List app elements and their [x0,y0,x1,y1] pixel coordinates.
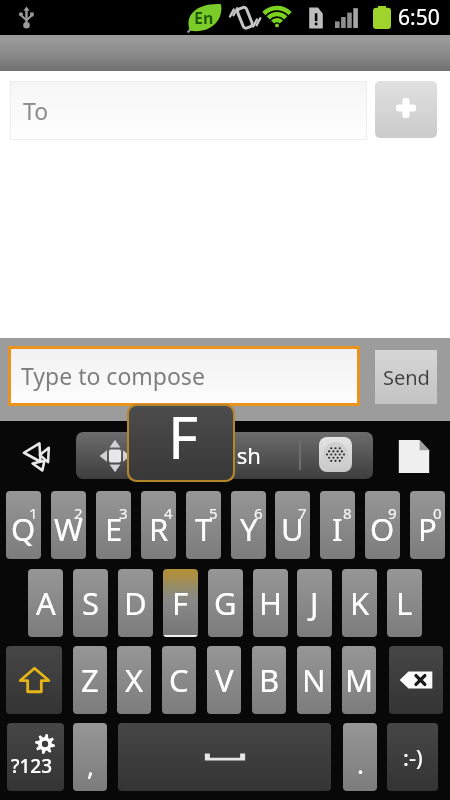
button[interactable]: M [342,646,376,714]
button[interactable]: Page [393,436,435,476]
button[interactable]: F [163,569,198,637]
button[interactable]: E [96,491,131,559]
button[interactable]: N [297,646,331,714]
button[interactable]: Z [73,646,107,714]
button[interactable]: Swype [18,436,58,476]
staticText: English [186,440,261,470]
staticText: I [332,508,343,550]
button[interactable]: Shift [6,646,62,714]
staticText: G [214,582,237,624]
staticText: W [54,508,83,550]
staticText: 3 [119,503,128,523]
staticText: . [357,746,364,781]
button[interactable]: X [117,646,151,714]
staticText: 7 [298,503,307,523]
staticText: J [310,582,319,624]
button[interactable]: B [252,646,286,714]
staticText: H [259,582,282,624]
button[interactable]: K [342,569,377,637]
button[interactable]: Voice input [319,437,352,472]
staticText: C [169,659,189,701]
button[interactable]: Q [6,491,41,559]
staticText: K [350,582,370,624]
staticText: F [168,406,199,471]
staticText: 5 [209,503,218,523]
button[interactable]: H [253,569,288,637]
staticText: 6 [254,503,263,523]
staticText: V [215,659,234,701]
button[interactable]: V [207,646,241,714]
staticText: Y [240,508,258,550]
button[interactable]: Type to compose [11,349,357,403]
button[interactable]: G [208,569,243,637]
staticText: R [149,508,169,550]
button[interactable]: Send [375,350,437,404]
button[interactable]: R [141,491,176,559]
button[interactable]: . [343,723,377,791]
button[interactable]: W [51,491,86,559]
button[interactable]: , [73,723,107,791]
button[interactable]: J [297,569,332,637]
staticText: , [87,748,94,783]
staticText: Send [383,364,430,391]
button[interactable]: Space [118,723,331,791]
button[interactable]: Symbols [7,723,64,791]
button[interactable]: P [410,491,445,559]
staticText: 1 [29,503,38,523]
button[interactable]: S [73,569,108,637]
staticText: Type to compose [21,360,205,391]
staticText: M [345,659,374,701]
staticText: S [82,582,100,624]
staticText: 0 [433,503,442,523]
staticText: X [125,659,144,701]
button[interactable]: I [320,491,355,559]
button[interactable]: U [275,491,310,559]
staticText: ?123 [11,753,53,779]
staticText: O [370,508,395,550]
staticText: :-) [403,742,423,772]
staticText: Q [11,508,36,550]
button[interactable]: L [387,569,422,637]
button[interactable]: Y [231,491,266,559]
staticText: 4 [164,503,173,523]
button[interactable]: O [365,491,400,559]
staticText: 9 [388,503,397,523]
button[interactable]: Add recipient [375,81,437,138]
button[interactable]: Move cursor [95,436,135,476]
staticText: U [281,508,304,550]
button[interactable]: T [186,491,221,559]
staticText: A [36,582,56,624]
staticText: To [23,95,49,126]
staticText: D [124,582,147,624]
button[interactable]: Backspace [389,646,443,714]
staticText: Z [81,659,99,701]
staticText: L [396,582,413,624]
staticText: P [418,508,437,550]
button[interactable]: A [28,569,63,637]
staticText: En [194,7,214,29]
staticText: 6:50 [398,3,440,32]
staticText: T [195,508,213,550]
staticText: 8 [343,503,352,523]
button[interactable]: Emoticon [387,723,438,791]
staticText: E [105,508,123,550]
staticText: B [259,659,280,701]
button[interactable]: C [162,646,196,714]
staticText: F [172,582,189,624]
button[interactable]: To [11,82,366,139]
button[interactable]: D [118,569,153,637]
staticText: N [302,659,326,701]
staticText: 2 [74,503,83,523]
